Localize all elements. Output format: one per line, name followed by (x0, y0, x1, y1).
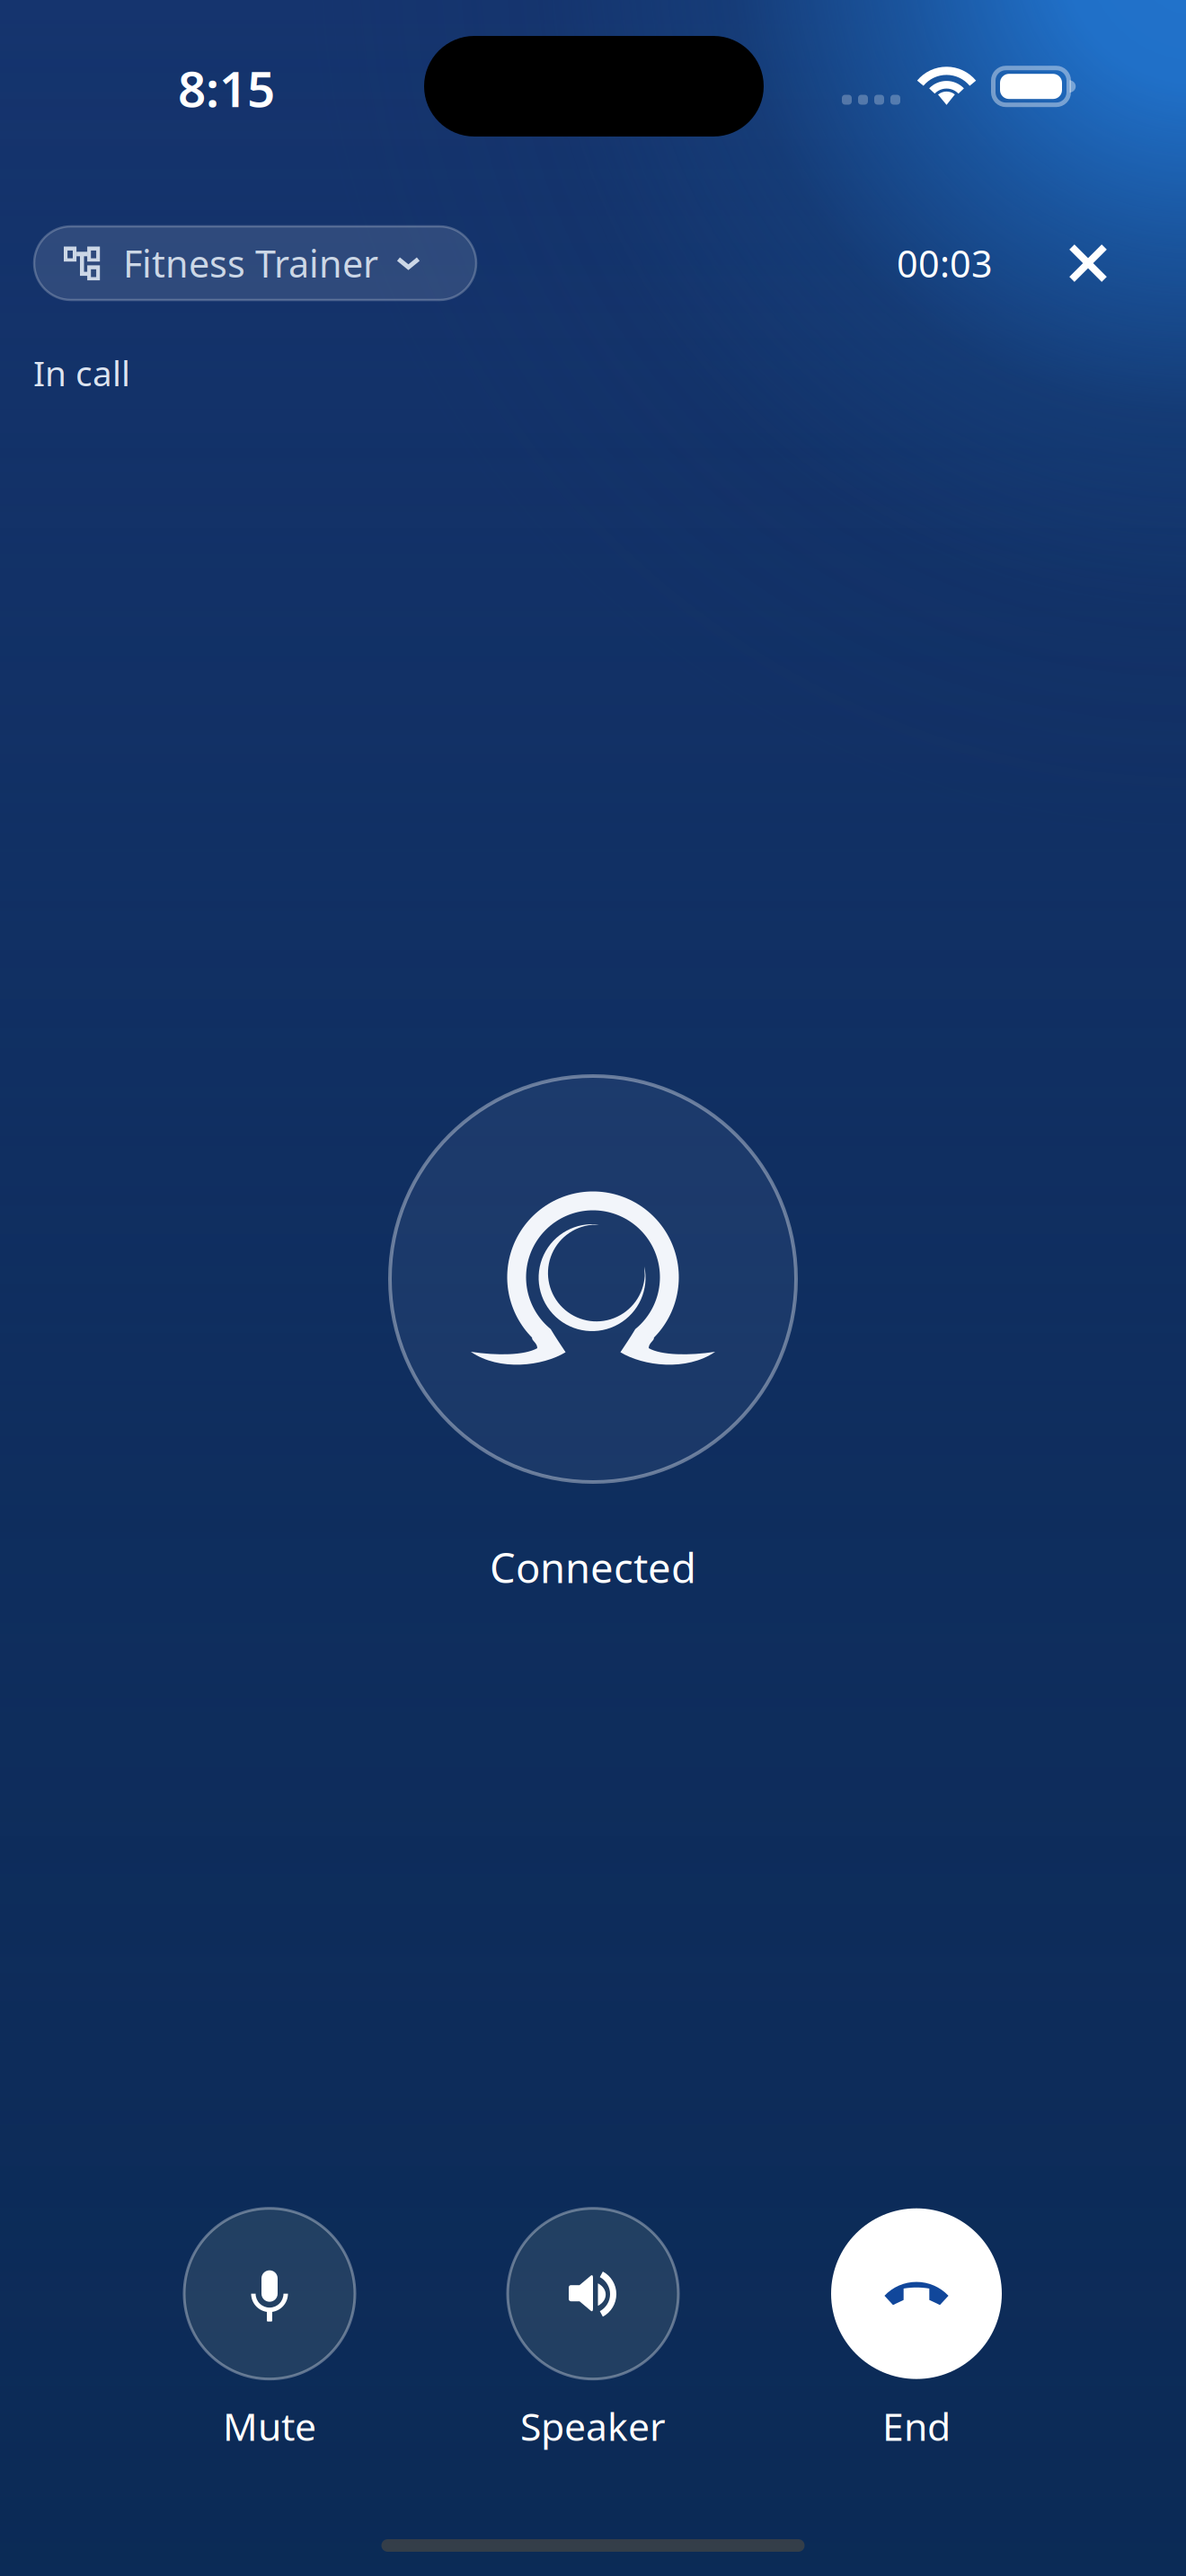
button[interactable]: Mute (162, 2210, 377, 2450)
staticText: Fitness Trainer (123, 239, 378, 288)
staticText: End (882, 2401, 951, 2452)
button[interactable]: Fitness Trainer (34, 226, 476, 300)
button[interactable]: Close (1045, 220, 1131, 306)
staticText: Mute (223, 2401, 316, 2452)
staticText: Connected (490, 1540, 696, 1594)
staticText: 8:15 (178, 55, 275, 121)
button[interactable]: Speaker (485, 2210, 701, 2450)
staticText: 00:03 (897, 239, 993, 288)
staticText: Speaker (520, 2401, 666, 2452)
staticText: In call (33, 350, 130, 396)
button[interactable]: End call (809, 2210, 1024, 2450)
